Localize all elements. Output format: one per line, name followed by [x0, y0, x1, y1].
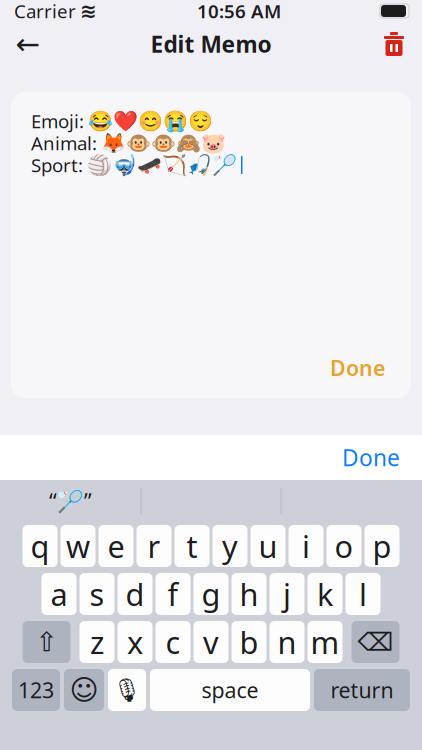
staticText: v	[203, 622, 219, 662]
staticText: Emoji:	[31, 109, 84, 133]
button[interactable]: Emoji	[64, 669, 104, 711]
staticText: c	[165, 622, 180, 662]
button[interactable]: x	[117, 621, 152, 663]
staticText: ≋	[80, 0, 97, 22]
button[interactable]: c	[155, 621, 190, 663]
staticText: 🦊🐵🐵🙈🐷	[101, 132, 226, 154]
staticText: return	[330, 676, 393, 704]
staticText: r	[147, 526, 160, 566]
button[interactable]: Shift	[22, 621, 70, 663]
button[interactable]: Space	[150, 669, 310, 711]
staticText: h	[239, 574, 258, 614]
button[interactable]: Return	[314, 669, 410, 711]
button[interactable]: l	[345, 573, 380, 615]
staticText: Done	[342, 442, 400, 472]
button[interactable]: y	[212, 525, 247, 567]
button[interactable]: f	[155, 573, 190, 615]
button[interactable]: j	[269, 573, 304, 615]
button[interactable]: Done	[332, 434, 410, 480]
button[interactable]: p	[364, 525, 399, 567]
staticText: m	[310, 622, 339, 662]
staticText: y	[222, 526, 238, 566]
button[interactable]: t	[174, 525, 209, 567]
staticText: d	[125, 574, 144, 614]
staticText: s	[89, 574, 104, 614]
button[interactable]: b	[231, 621, 266, 663]
button[interactable]: Dictation	[108, 669, 146, 711]
button[interactable]: Delete memo	[372, 24, 416, 64]
button[interactable]: a	[41, 573, 76, 615]
button[interactable]: k	[307, 573, 342, 615]
staticText: p	[372, 526, 391, 566]
button[interactable]: m	[307, 621, 342, 663]
button[interactable]: i	[288, 525, 323, 567]
staticText: space	[201, 676, 258, 704]
staticText: n	[277, 622, 296, 662]
staticText: z	[90, 622, 104, 662]
staticText: b	[239, 622, 258, 662]
staticText: i	[302, 526, 310, 566]
staticText: ⇧	[35, 627, 57, 657]
button[interactable]: Numbers	[12, 669, 60, 711]
button[interactable]: “🏸”	[0, 481, 140, 521]
button[interactable]: Back	[6, 24, 50, 64]
button[interactable]: g	[193, 573, 228, 615]
staticText: 10:56 AM	[197, 0, 281, 23]
staticText: t	[186, 526, 197, 566]
staticText: f	[167, 574, 178, 614]
staticText: Carrier	[14, 0, 76, 23]
button[interactable]: d	[117, 573, 152, 615]
staticText: ☺	[69, 674, 98, 706]
staticText: j	[283, 574, 291, 614]
staticText: Sport:	[31, 153, 83, 177]
staticText: “🏸”	[49, 487, 92, 515]
button[interactable]: s	[79, 573, 114, 615]
staticText: u	[258, 526, 277, 566]
button[interactable]: z	[79, 621, 114, 663]
staticText: o	[334, 526, 353, 566]
staticText: 123	[18, 676, 54, 704]
staticText: l	[359, 574, 367, 614]
staticText: x	[127, 622, 143, 662]
staticText: ←	[15, 27, 40, 61]
button[interactable]: Delete	[351, 621, 399, 663]
button[interactable]: q	[22, 525, 57, 567]
staticText: Edit Memo	[150, 29, 271, 59]
button[interactable]: Done	[324, 350, 391, 386]
staticText: 🎙	[112, 677, 141, 703]
staticText: k	[317, 574, 333, 614]
staticText: w	[66, 526, 90, 566]
staticText: a	[50, 574, 67, 614]
staticText: Animal:	[31, 131, 97, 155]
staticText: 🏐🤿🛹🏹🎣🏸	[87, 154, 237, 176]
button[interactable]: w	[60, 525, 95, 567]
button[interactable]: v	[193, 621, 228, 663]
button[interactable]: o	[326, 525, 361, 567]
staticText: 😂❤️😊😭😌	[88, 110, 213, 132]
staticText: q	[30, 526, 49, 566]
button[interactable]: n	[269, 621, 304, 663]
button[interactable]: u	[250, 525, 285, 567]
button[interactable]: h	[231, 573, 266, 615]
button[interactable]: r	[136, 525, 171, 567]
staticText: Done	[330, 354, 385, 382]
staticText: e	[107, 526, 124, 566]
staticText: ⌫	[357, 628, 393, 656]
staticText: g	[201, 574, 220, 614]
button[interactable]: e	[98, 525, 133, 567]
